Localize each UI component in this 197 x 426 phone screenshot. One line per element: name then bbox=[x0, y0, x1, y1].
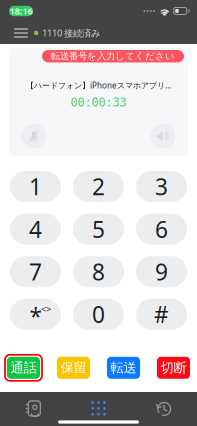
staticText: 8 bbox=[92, 257, 105, 287]
button[interactable]: Speaker bbox=[146, 121, 180, 151]
staticText: 5 bbox=[92, 214, 105, 244]
button[interactable]: 2 bbox=[73, 171, 124, 202]
button[interactable]: Mute bbox=[17, 121, 51, 151]
staticText: # bbox=[154, 299, 169, 329]
button[interactable]: 9 bbox=[136, 256, 187, 287]
staticText: 通話 bbox=[10, 360, 36, 376]
button[interactable]: Recents bbox=[131, 396, 197, 420]
button[interactable]: 1 bbox=[10, 171, 61, 202]
staticText: 3 bbox=[155, 171, 168, 201]
staticText: 【ハードフォン】iPhoneスマホアプリ… bbox=[26, 80, 171, 91]
button[interactable]: 転送 bbox=[105, 355, 142, 381]
button[interactable]: 0 bbox=[73, 299, 124, 330]
button[interactable]: # bbox=[136, 299, 187, 330]
staticText: 00:00:33 bbox=[70, 96, 126, 109]
button[interactable]: Keypad bbox=[66, 396, 131, 420]
staticText: 1 bbox=[29, 171, 42, 201]
button[interactable]: 7 bbox=[10, 256, 61, 287]
button[interactable]: 5 bbox=[73, 214, 124, 245]
button[interactable]: 4 bbox=[10, 214, 61, 245]
button[interactable]: Contacts bbox=[0, 396, 66, 420]
staticText: <> bbox=[41, 303, 51, 315]
button[interactable]: 3 bbox=[136, 171, 187, 202]
staticText: 転送番号を入力してください bbox=[51, 50, 175, 62]
button[interactable]: 保留 bbox=[55, 355, 92, 381]
staticText: 2 bbox=[92, 171, 105, 201]
button[interactable]: 6 bbox=[136, 214, 187, 245]
staticText: 7 bbox=[29, 257, 42, 287]
button[interactable]: 8 bbox=[73, 256, 124, 287]
button[interactable]: Menu bbox=[8, 22, 34, 44]
button[interactable]: * bbox=[10, 299, 61, 330]
staticText: * bbox=[29, 301, 41, 331]
button[interactable]: 通話 bbox=[5, 355, 42, 381]
staticText: 0 bbox=[92, 299, 105, 329]
staticText: 9 bbox=[155, 257, 168, 287]
staticText: 4 bbox=[29, 214, 42, 244]
staticText: 切断 bbox=[160, 360, 186, 376]
staticText: 6 bbox=[155, 214, 168, 244]
staticText: 1110 接続済み bbox=[42, 27, 101, 39]
staticText: 保留 bbox=[60, 360, 86, 376]
staticText: 18:16 bbox=[9, 5, 32, 17]
button[interactable]: 切断 bbox=[155, 355, 192, 381]
staticText: 転送 bbox=[110, 360, 136, 376]
